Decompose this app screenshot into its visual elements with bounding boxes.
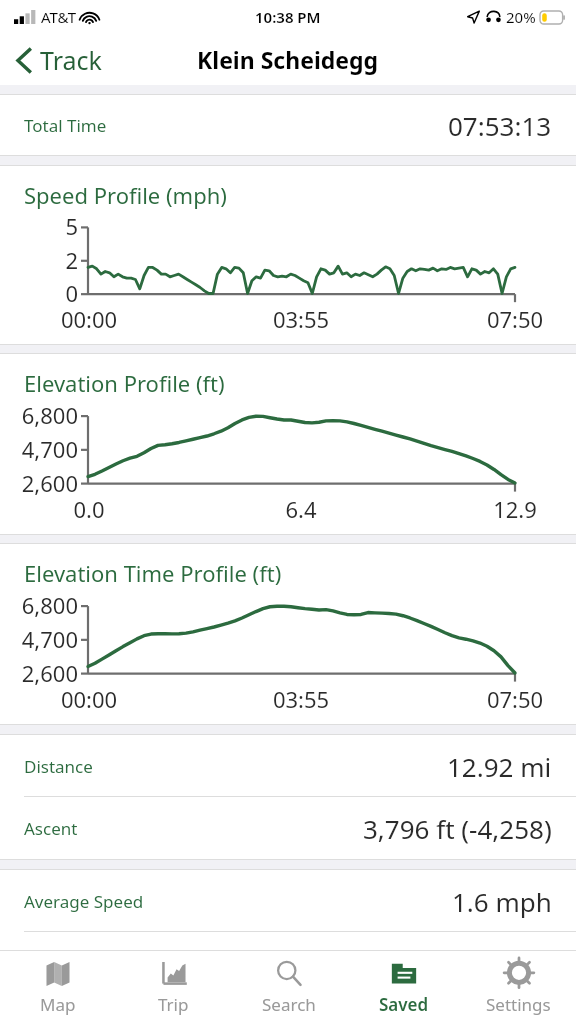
staticText: 5 [52, 211, 78, 241]
staticText: 1.6 mph [452, 884, 552, 919]
button[interactable]: Map [0, 951, 116, 1024]
staticText: Speed Profile (mph) [24, 180, 227, 210]
staticText: 4,700 [6, 434, 78, 464]
staticText: 00:00 [58, 304, 120, 334]
staticText: 20% [506, 7, 536, 27]
staticText: 2 [52, 245, 78, 275]
staticText: AT&T [41, 7, 76, 27]
button[interactable]: Total Time [0, 95, 576, 155]
staticText: Trip [158, 993, 189, 1016]
button[interactable]: Average Speed [0, 870, 576, 932]
staticText: Track [40, 43, 102, 77]
staticText: Distance [24, 755, 93, 778]
staticText: 3,796 ft (-4,258) [363, 811, 552, 846]
staticText: 07:50 [484, 304, 546, 334]
button[interactable]: Elevation Profile (ft) [0, 354, 576, 534]
staticText: 12.9 [484, 494, 546, 524]
staticText: 0.0 [58, 494, 120, 524]
staticText: 12.92 mi [447, 749, 552, 784]
staticText: Map [40, 993, 76, 1016]
staticText: Ascent [24, 817, 78, 840]
staticText: 4,700 [6, 624, 78, 654]
staticText: Settings [486, 993, 551, 1016]
staticText: 10:38 PM [255, 7, 321, 27]
button[interactable]: Saved [346, 951, 461, 1024]
staticText: 03:55 [270, 684, 332, 714]
staticText: 6,800 [6, 400, 78, 430]
button[interactable]: Distance [0, 735, 576, 797]
staticText: Klein Scheidegg [197, 44, 379, 75]
button[interactable]: Trip [116, 951, 231, 1024]
button[interactable]: Speed Profile (mph) [0, 166, 576, 344]
button[interactable]: Settings [461, 951, 576, 1024]
staticText: 2,600 [6, 468, 78, 498]
staticText: Search [262, 993, 316, 1016]
button[interactable]: Ascent [0, 797, 576, 859]
staticText: 07:50 [484, 684, 546, 714]
staticText: 07:53:13 [448, 108, 552, 143]
button[interactable]: Track [0, 37, 114, 83]
staticText: 2,600 [6, 658, 78, 688]
staticText: Total Time [24, 114, 107, 137]
staticText: Elevation Profile (ft) [24, 368, 225, 398]
staticText: 03:55 [270, 304, 332, 334]
staticText: Elevation Time Profile (ft) [24, 558, 282, 588]
staticText: 6.4 [270, 494, 332, 524]
staticText: Average Speed [24, 890, 144, 913]
staticText: 00:00 [58, 684, 120, 714]
staticText: 0 [52, 278, 78, 308]
staticText: Saved [379, 993, 429, 1016]
button[interactable]: Search [231, 951, 346, 1024]
staticText: 6,800 [6, 590, 78, 620]
button[interactable]: Elevation Time Profile (ft) [0, 544, 576, 724]
